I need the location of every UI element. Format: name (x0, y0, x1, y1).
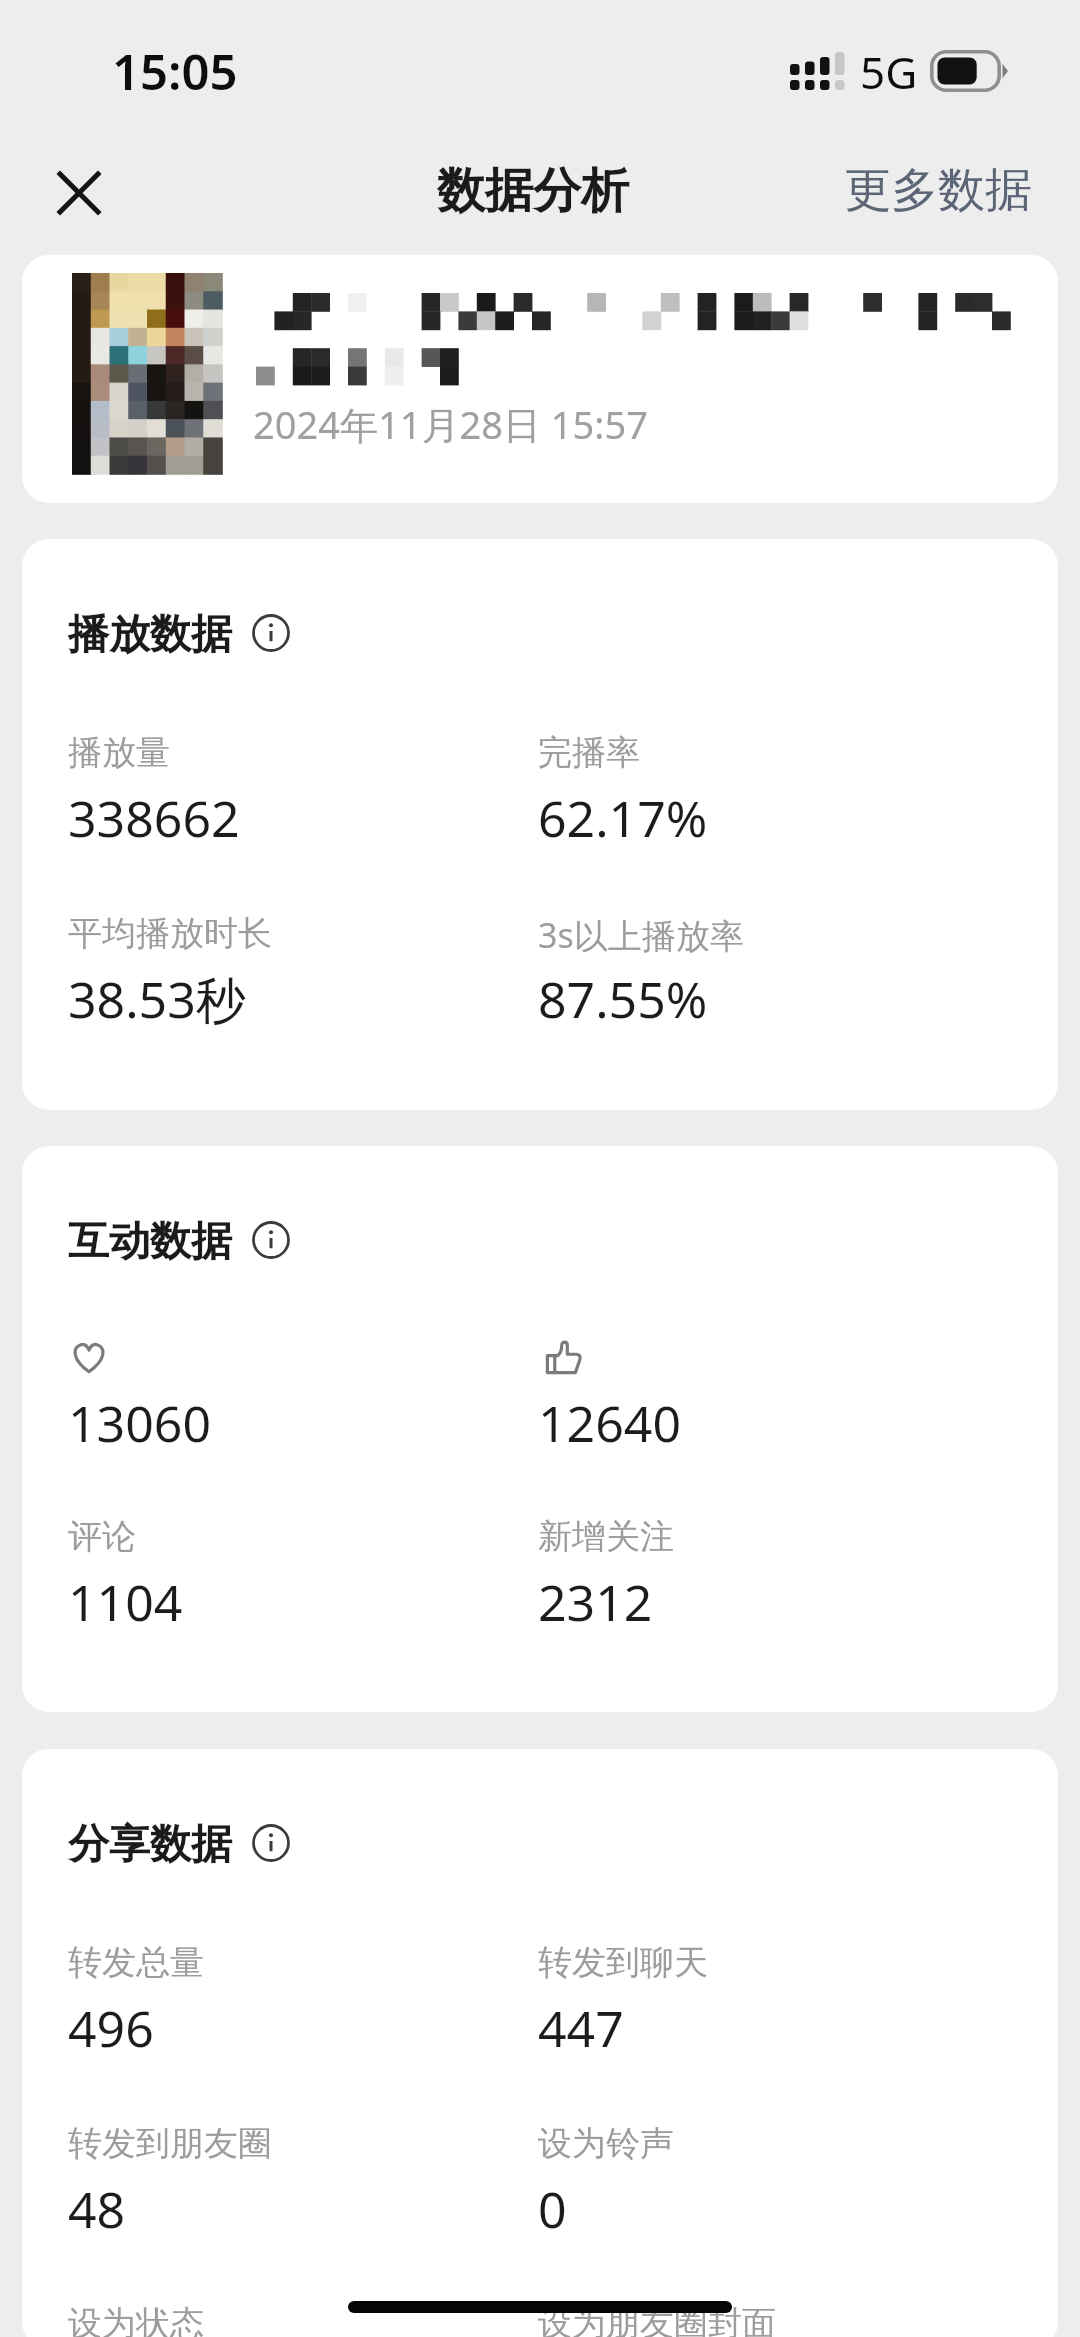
staticText: 更多数据 (844, 161, 1032, 220)
staticText: 62.17% (538, 784, 708, 852)
staticText: 2024年11月28日 15:57 (253, 398, 648, 450)
staticText: 评论 (68, 1515, 136, 1558)
staticText: 0 (538, 2175, 567, 2243)
staticText: 2312 (538, 1568, 653, 1636)
staticText: 48 (68, 2175, 126, 2243)
staticText: 38.53秒 (68, 965, 246, 1033)
staticText: 设为朋友圈封面 (538, 2302, 776, 2337)
staticText: 转发总量 (68, 1941, 204, 1984)
staticText: 播放量 (68, 731, 170, 774)
staticText: 3s以上播放率 (538, 912, 744, 958)
staticText: 设为状态 (68, 2302, 204, 2337)
staticText: 447 (538, 1994, 624, 2062)
button[interactable]: Close (31, 145, 127, 241)
staticText: 数据分析 (437, 161, 629, 221)
staticText: 播放数据 (68, 609, 232, 661)
staticText: 转发到朋友圈 (68, 2122, 272, 2165)
staticText: 设为铃声 (538, 2122, 674, 2165)
staticText: 87.55% (538, 965, 708, 1033)
staticText: 12640 (538, 1389, 681, 1457)
button[interactable]: More info (247, 609, 295, 657)
button[interactable]: 更多数据 (823, 145, 1052, 235)
staticText: 平均播放时长 (68, 912, 272, 955)
staticText: 新增关注 (538, 1515, 674, 1558)
staticText: 13060 (68, 1389, 211, 1457)
staticText: 1104 (68, 1568, 183, 1636)
staticText: 转发到聊天 (538, 1941, 708, 1984)
staticText: 完播率 (538, 731, 640, 774)
staticText: 338662 (68, 784, 240, 852)
button[interactable]: More info (247, 1819, 295, 1867)
button[interactable]: More info (247, 1216, 295, 1264)
staticText: 496 (68, 1994, 154, 2062)
staticText: 15:05 (112, 38, 238, 105)
staticText: 互动数据 (68, 1216, 232, 1268)
button[interactable]: 2024年11月28日 15:57 (22, 255, 1058, 503)
staticText: 5G (860, 42, 918, 102)
staticText: 分享数据 (68, 1819, 232, 1871)
